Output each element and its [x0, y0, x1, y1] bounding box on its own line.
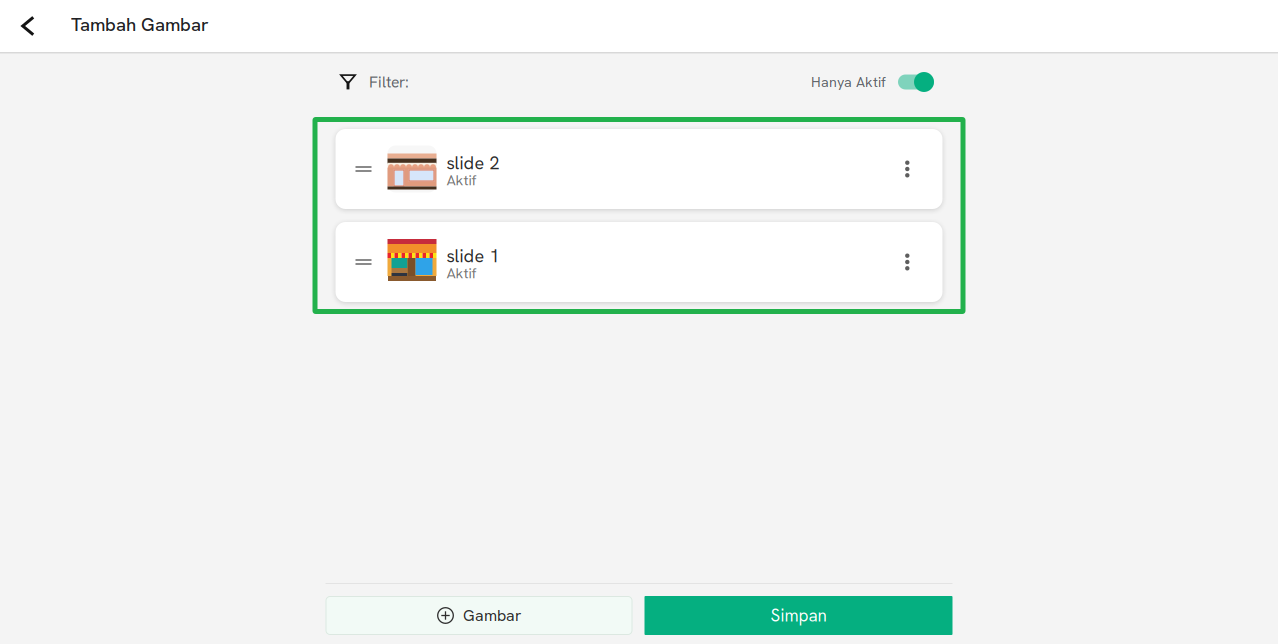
button[interactable]: Gambar — [325, 596, 632, 635]
staticText: Filter: — [369, 72, 409, 92]
button[interactable]: Simpan — [644, 596, 952, 635]
button[interactable]: slide 2 — [335, 129, 942, 209]
staticText: Simpan — [770, 604, 826, 627]
staticText: Hanya Aktif — [811, 73, 886, 91]
button[interactable]: Hanya Aktif — [898, 71, 934, 92]
staticText: Aktif — [446, 264, 476, 283]
staticText: Aktif — [446, 171, 476, 190]
staticText: slide 1 — [446, 244, 499, 268]
staticText: Gambar — [463, 605, 521, 626]
staticText: Tambah Gambar — [71, 12, 209, 37]
button[interactable]: Back — [0, 0, 56, 52]
button[interactable]: slide 1 — [335, 222, 942, 302]
staticText: slide 2 — [446, 151, 499, 175]
